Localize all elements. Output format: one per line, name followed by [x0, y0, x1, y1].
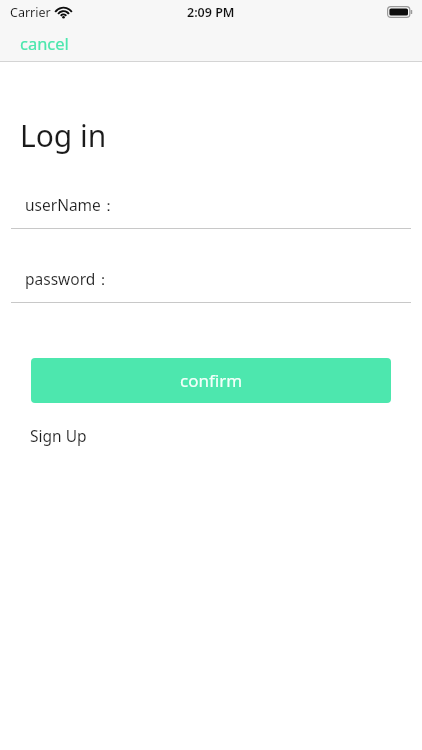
- button[interactable]: Sign Up: [22, 421, 95, 450]
- staticText: cancel: [20, 32, 69, 54]
- staticText: 2:09 PM: [187, 4, 235, 21]
- button[interactable]: confirm: [31, 358, 391, 403]
- staticText: Carrier: [10, 4, 51, 21]
- button[interactable]: userName：: [0, 194, 422, 228]
- staticText: password：: [25, 268, 111, 289]
- button[interactable]: cancel: [0, 26, 83, 60]
- staticText: userName：: [25, 194, 117, 215]
- staticText: Log in: [20, 115, 107, 156]
- button[interactable]: password：: [0, 268, 422, 302]
- other: Battery: [387, 6, 413, 18]
- other: Wi-Fi: [57, 7, 70, 18]
- staticText: Sign Up: [30, 425, 87, 446]
- staticText: confirm: [180, 369, 243, 392]
